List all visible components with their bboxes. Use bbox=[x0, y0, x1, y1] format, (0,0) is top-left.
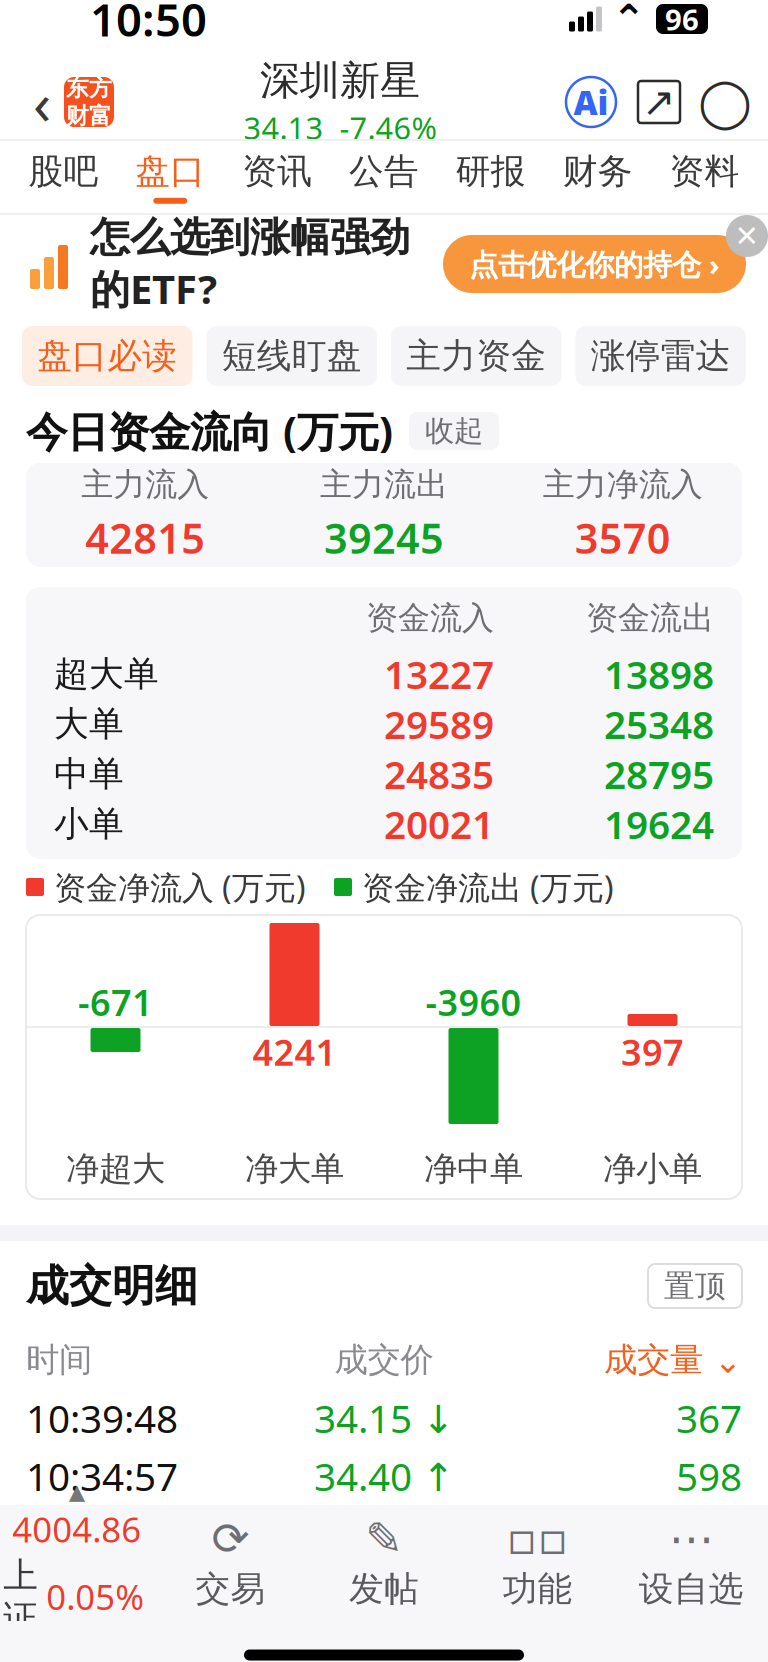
staticText: 主力资金 bbox=[406, 335, 546, 377]
button[interactable]: ✎ bbox=[307, 1516, 461, 1610]
button[interactable]: 资讯 bbox=[224, 141, 331, 213]
staticText: 598 bbox=[676, 1450, 742, 1502]
staticText: 财富 bbox=[66, 102, 112, 130]
staticText: 34.40 ↑ bbox=[314, 1450, 454, 1502]
button[interactable]: ▫▫ bbox=[461, 1516, 614, 1610]
staticText: 净中单 bbox=[424, 1148, 523, 1189]
staticText: 怎么选到涨幅强劲的ETF? bbox=[90, 213, 410, 315]
staticText: 13898 bbox=[604, 648, 714, 700]
staticText: 涨停雷达 bbox=[591, 335, 731, 377]
staticText: 深圳新星 bbox=[260, 56, 420, 105]
staticText: 4241 bbox=[252, 1028, 336, 1076]
button[interactable]: 关闭广告 bbox=[726, 215, 768, 257]
staticText: 0.05% bbox=[46, 1574, 144, 1620]
button[interactable]: 东方财富 bbox=[64, 77, 114, 127]
staticText: 小单 bbox=[54, 803, 124, 845]
staticText: 超大单 bbox=[54, 653, 159, 695]
staticText: 397 bbox=[621, 1028, 684, 1076]
staticText: 发帖 bbox=[349, 1568, 419, 1610]
staticText: 资金净流入 (万元) bbox=[54, 866, 306, 908]
button[interactable]: 盘口必读 bbox=[22, 326, 192, 386]
button[interactable]: ⟳ bbox=[154, 1516, 307, 1610]
staticText: 公告 bbox=[349, 150, 419, 193]
button[interactable]: 搜索 bbox=[702, 79, 748, 125]
staticText: ▫▫ bbox=[507, 1513, 569, 1564]
staticText: 净大单 bbox=[245, 1148, 344, 1189]
staticText: 净小单 bbox=[603, 1148, 702, 1189]
button[interactable]: 收起 bbox=[409, 412, 499, 450]
button[interactable]: 成交量 ⌄ bbox=[503, 1339, 742, 1380]
staticText: -3960 bbox=[425, 978, 521, 1026]
button[interactable]: ▲ bbox=[0, 1480, 154, 1646]
button[interactable]: 怎么选到涨幅强劲的ETF? bbox=[0, 215, 768, 313]
staticText: 10:34:57 bbox=[26, 1450, 178, 1502]
staticText: 20021 bbox=[384, 798, 494, 850]
staticText: 置顶 bbox=[664, 1267, 726, 1305]
staticText: 上证 bbox=[3, 1554, 38, 1639]
staticText: 东方 bbox=[66, 74, 112, 102]
button[interactable]: 涨停雷达 bbox=[575, 326, 746, 386]
button[interactable]: 股吧 bbox=[10, 141, 117, 213]
button[interactable]: 分享 bbox=[638, 81, 680, 123]
staticText: 28795 bbox=[604, 748, 714, 800]
button[interactable]: 研报 bbox=[437, 141, 544, 213]
staticText: 25348 bbox=[604, 698, 714, 750]
staticText: 短线盯盘 bbox=[222, 335, 362, 377]
staticText: 盘口必读 bbox=[37, 335, 177, 377]
button[interactable]: 置顶 bbox=[648, 1264, 742, 1308]
staticText: 4004.86 bbox=[12, 1506, 141, 1552]
staticText: ▲ bbox=[69, 1480, 85, 1504]
staticText: 96 bbox=[665, 0, 699, 38]
staticText: 42815 bbox=[85, 510, 205, 565]
staticText: 29589 bbox=[384, 698, 494, 750]
staticText: 主力流入 bbox=[81, 465, 209, 504]
staticText: 资料 bbox=[670, 150, 740, 193]
staticText: 资金流出 bbox=[586, 598, 714, 638]
staticText: ⋯ bbox=[669, 1513, 714, 1564]
staticText: 34.13 -7.46% bbox=[243, 107, 436, 148]
staticText: 成交明细 bbox=[26, 1260, 198, 1312]
staticText: 收起 bbox=[425, 413, 483, 449]
button[interactable]: 公告 bbox=[331, 141, 437, 213]
staticText: 34.15 ↓ bbox=[314, 1392, 454, 1444]
staticText: 成交量 ⌄ bbox=[604, 1339, 742, 1380]
staticText: 设自选 bbox=[639, 1568, 744, 1610]
staticText: ↗ bbox=[642, 79, 676, 125]
button[interactable]: 资料 bbox=[651, 141, 758, 213]
staticText: 中单 bbox=[54, 753, 124, 795]
button[interactable]: ⋯ bbox=[614, 1516, 768, 1610]
staticText: 资讯 bbox=[242, 150, 312, 193]
staticText: ⌃ bbox=[612, 0, 646, 42]
staticText: 资金净流出 (万元) bbox=[362, 866, 614, 908]
staticText: 研报 bbox=[456, 150, 526, 193]
button[interactable]: AI 助手 bbox=[566, 77, 616, 127]
button[interactable]: 返回 bbox=[20, 74, 64, 130]
staticText: 主力流出 bbox=[320, 465, 448, 504]
staticText: ✎ bbox=[365, 1513, 403, 1564]
button[interactable]: 盘口 bbox=[117, 141, 224, 213]
staticText: ◯ bbox=[698, 75, 752, 129]
staticText: ✕ bbox=[734, 219, 759, 253]
staticText: 10:39:48 bbox=[26, 1392, 178, 1444]
staticText: 功能 bbox=[503, 1568, 573, 1610]
button[interactable]: 主力资金 bbox=[391, 326, 561, 386]
staticText: 24835 bbox=[384, 748, 494, 800]
button[interactable]: 财务 bbox=[544, 141, 651, 213]
staticText: 点击优化你的持仓 › bbox=[469, 244, 720, 283]
staticText: 19624 bbox=[604, 798, 714, 850]
button[interactable]: 短线盯盘 bbox=[206, 326, 377, 386]
staticText: 交易 bbox=[195, 1568, 265, 1610]
staticText: -671 bbox=[78, 978, 153, 1026]
staticText: 财务 bbox=[563, 150, 633, 193]
staticText: Ai bbox=[573, 80, 608, 124]
staticText: 盘口 bbox=[135, 150, 205, 193]
staticText: 净超大 bbox=[66, 1148, 165, 1189]
staticText: 39245 bbox=[324, 510, 444, 565]
staticText: ‹ bbox=[33, 63, 51, 141]
staticText: 股吧 bbox=[28, 150, 98, 193]
staticText: 大单 bbox=[54, 703, 124, 745]
staticText: ⟳ bbox=[211, 1513, 249, 1564]
staticText: 13227 bbox=[384, 648, 494, 700]
staticText: 成交价 bbox=[334, 1339, 433, 1380]
staticText: 367 bbox=[676, 1392, 742, 1444]
